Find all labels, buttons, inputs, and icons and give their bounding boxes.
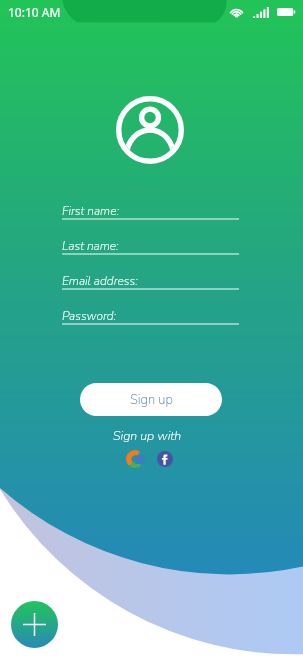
button[interactable]: Password:	[62, 309, 239, 325]
button[interactable]: Email address:	[62, 274, 239, 290]
staticText: First name:	[62, 203, 119, 219]
staticText: Sign up	[130, 391, 173, 409]
button[interactable]: Last name:	[62, 239, 239, 255]
staticText: Email address:	[62, 273, 138, 289]
button[interactable]: Sign up with Google	[127, 450, 146, 468]
button[interactable]: Add	[11, 601, 58, 648]
button[interactable]: Sign up with Facebook	[157, 450, 173, 468]
button[interactable]: First name:	[62, 204, 239, 220]
button[interactable]: Sign up	[80, 383, 222, 416]
staticText: Last name:	[62, 238, 119, 254]
staticText: Sign up with	[113, 427, 182, 444]
staticText: Password:	[62, 308, 117, 324]
staticText: 10:10 AM	[8, 4, 61, 20]
